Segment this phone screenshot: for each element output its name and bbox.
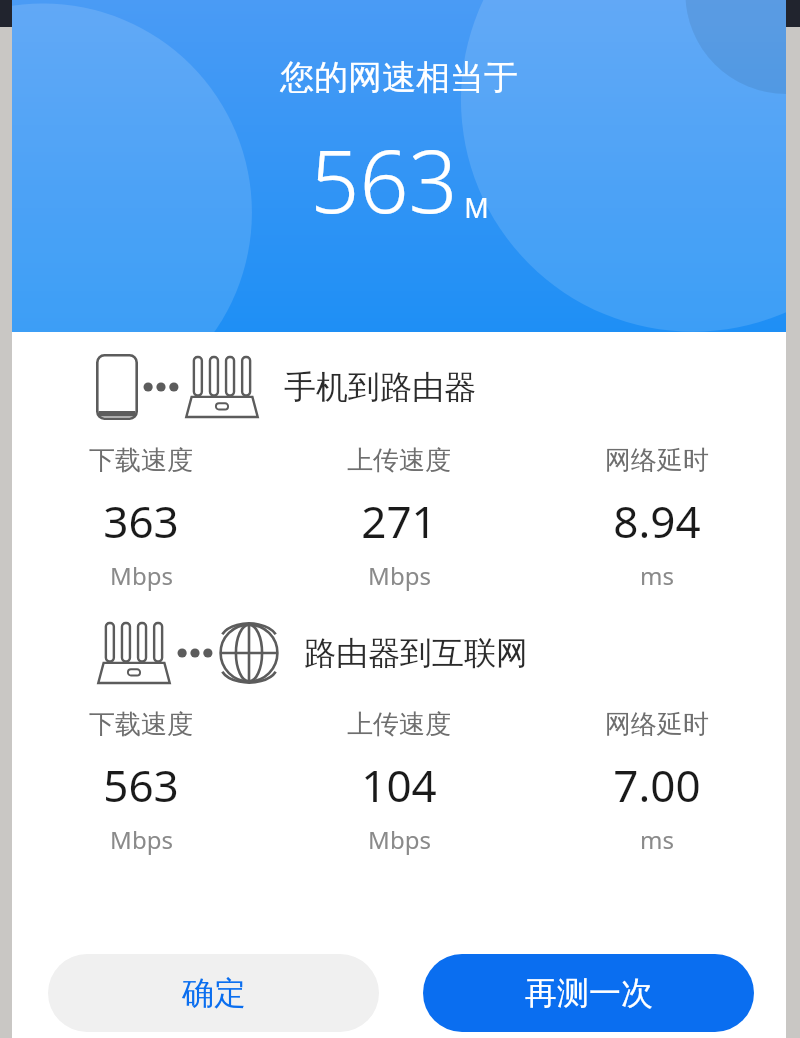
- staticText: 下载速度: [89, 444, 193, 477]
- staticText: 104: [361, 755, 437, 815]
- button[interactable]: 下载速度: [12, 708, 270, 856]
- button[interactable]: 再测一次: [423, 954, 754, 1032]
- staticText: 下载速度: [89, 708, 193, 741]
- button[interactable]: 上传速度: [270, 444, 528, 592]
- staticText: 手机到路由器: [284, 367, 476, 407]
- button[interactable]: Router: [96, 622, 786, 684]
- staticText: Mbps: [368, 823, 431, 856]
- button[interactable]: 上传速度: [270, 708, 528, 856]
- other: Router: [96, 622, 172, 684]
- staticText: 上传速度: [347, 708, 451, 741]
- staticText: 7.00: [613, 755, 701, 815]
- staticText: 363: [103, 491, 179, 551]
- button[interactable]: 下载速度: [12, 444, 270, 592]
- other: Phone: [96, 354, 138, 420]
- staticText: 563: [103, 755, 179, 815]
- staticText: 网络延时: [605, 444, 709, 477]
- other: Internet: [218, 622, 280, 684]
- button[interactable]: 网络延时: [528, 444, 786, 592]
- staticText: 确定: [182, 973, 246, 1013]
- staticText: ms: [640, 823, 674, 856]
- staticText: 8.94: [613, 491, 701, 551]
- staticText: Mbps: [368, 559, 431, 592]
- staticText: Mbps: [110, 559, 173, 592]
- other: Router: [184, 356, 260, 418]
- staticText: 网络延时: [605, 708, 709, 741]
- staticText: 路由器到互联网: [304, 633, 528, 673]
- staticText: Mbps: [110, 823, 173, 856]
- staticText: ms: [640, 559, 674, 592]
- button[interactable]: 确定: [48, 954, 379, 1032]
- staticText: M: [464, 189, 489, 226]
- button[interactable]: 网络延时: [528, 708, 786, 856]
- staticText: 您的网速相当于: [280, 56, 518, 99]
- staticText: 563: [310, 121, 458, 238]
- button[interactable]: Phone: [96, 354, 786, 420]
- staticText: 上传速度: [347, 444, 451, 477]
- staticText: 再测一次: [525, 973, 653, 1013]
- staticText: 271: [361, 491, 437, 551]
